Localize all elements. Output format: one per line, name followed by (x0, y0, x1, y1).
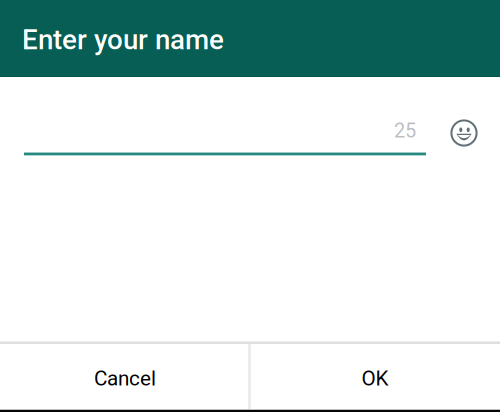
button[interactable]: OK (250, 345, 500, 412)
button[interactable]: Emoji (446, 115, 482, 151)
staticText: OK (361, 366, 388, 391)
staticText: 25 (394, 119, 416, 142)
staticText: Cancel (94, 366, 156, 391)
staticText: Enter your name (22, 23, 224, 56)
button[interactable]: Cancel (0, 345, 250, 412)
button[interactable]: Name (24, 116, 426, 162)
